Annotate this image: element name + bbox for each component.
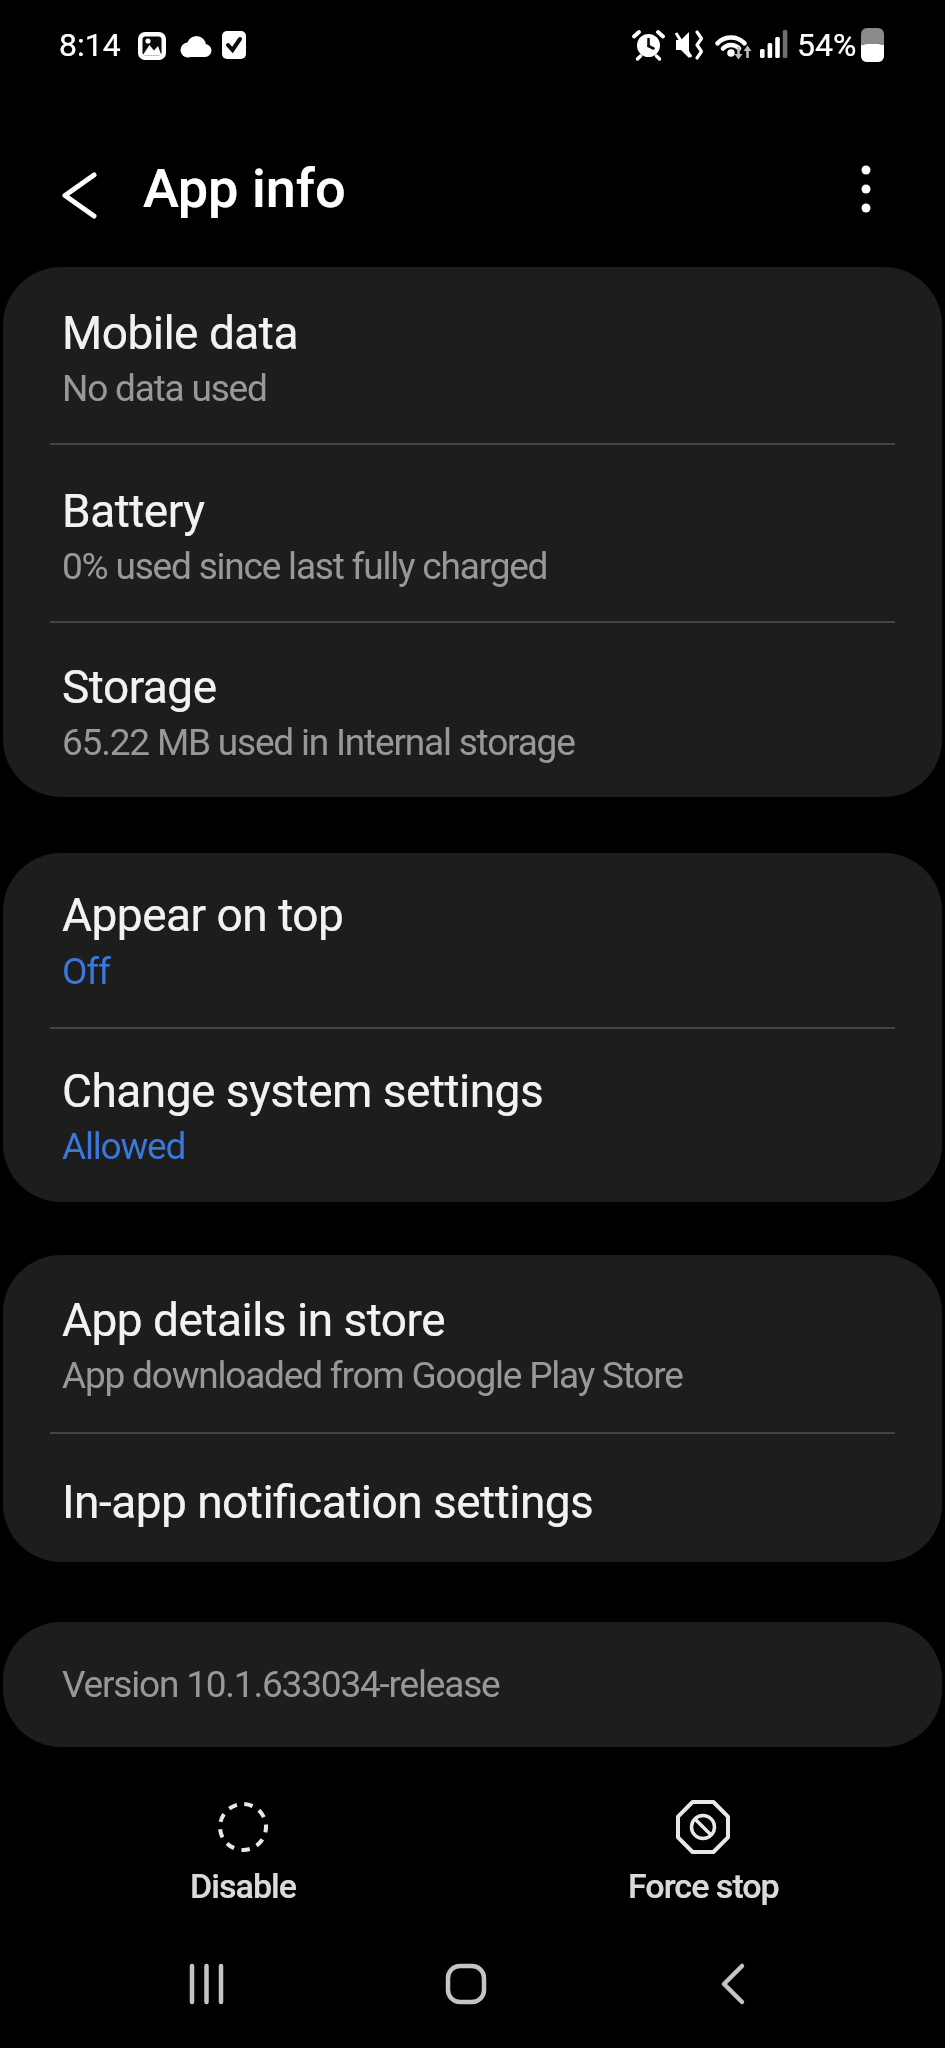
button[interactable]: Change system settings <box>3 1029 942 1202</box>
staticText: 54% <box>797 26 857 64</box>
button[interactable]: Disable <box>143 1790 343 1906</box>
staticText: Storage <box>62 660 217 714</box>
staticText: 8:14 <box>59 26 121 64</box>
button[interactable]: Battery <box>3 445 942 621</box>
staticText: Allowed <box>62 1125 186 1168</box>
button[interactable]: In-app notification settings <box>3 1434 942 1562</box>
staticText: App downloaded from Google Play Store <box>62 1354 683 1397</box>
staticText: 65.22 MB used in Internal storage <box>62 721 575 764</box>
staticText: App info <box>143 157 346 220</box>
button[interactable] <box>48 165 110 227</box>
button[interactable]: Storage <box>3 623 942 797</box>
button[interactable]: Version 10.1.633034-release <box>3 1622 942 1747</box>
staticText: Disable <box>190 1866 296 1906</box>
staticText: Force stop <box>628 1866 779 1906</box>
button[interactable]: Mobile data <box>3 267 942 443</box>
staticText: Battery <box>62 484 205 538</box>
button[interactable] <box>683 1934 783 2034</box>
staticText: Off <box>62 950 110 993</box>
staticText: App details in store <box>62 1293 446 1347</box>
staticText: Mobile data <box>62 306 298 360</box>
button[interactable] <box>156 1934 256 2034</box>
button[interactable] <box>836 158 896 218</box>
button[interactable] <box>416 1934 516 2034</box>
staticText: 0% used since last fully charged <box>62 545 548 588</box>
staticText: In-app notification settings <box>62 1475 594 1529</box>
staticText: Change system settings <box>62 1064 544 1118</box>
staticText: No data used <box>62 367 267 410</box>
staticText: Appear on top <box>62 888 344 942</box>
button[interactable]: App details in store <box>3 1255 942 1432</box>
button[interactable]: Force stop <box>603 1790 803 1906</box>
staticText: Version 10.1.633034-release <box>62 1663 500 1706</box>
button[interactable]: Appear on top <box>3 853 942 1027</box>
